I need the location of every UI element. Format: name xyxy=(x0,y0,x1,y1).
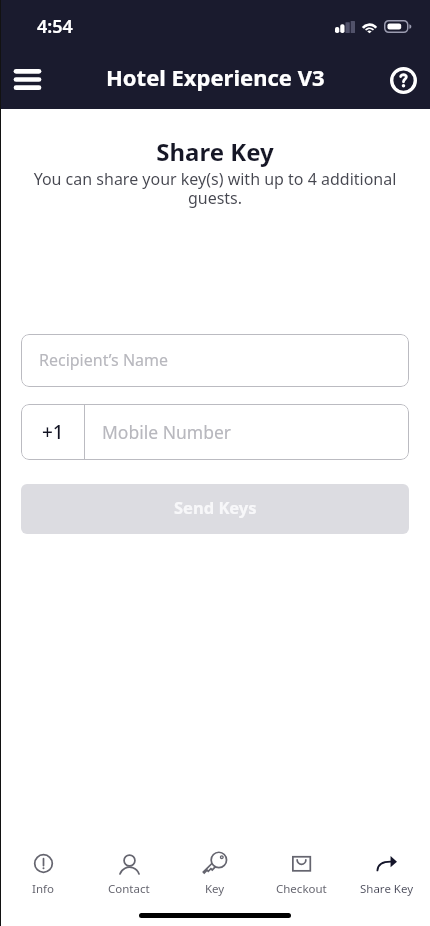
staticText: You can share your key(s) with up to 4 a… xyxy=(16,168,414,209)
button[interactable]: +1 xyxy=(21,404,84,460)
button[interactable]: Contact xyxy=(86,826,172,898)
staticText: Key xyxy=(205,881,225,897)
staticText: Info xyxy=(32,881,54,897)
staticText: Hotel Experience V3 xyxy=(106,62,325,92)
button[interactable]: Help xyxy=(381,58,425,102)
staticText: Checkout xyxy=(276,881,327,897)
staticText: 4:54 xyxy=(37,14,73,39)
button[interactable]: Share Key xyxy=(344,826,430,898)
button[interactable]: Menu xyxy=(3,55,51,103)
button[interactable]: Info xyxy=(0,826,86,898)
button[interactable]: Key xyxy=(172,826,258,898)
staticText: Send Keys xyxy=(174,496,257,518)
staticText: Recipient’s Name xyxy=(39,349,169,371)
staticText: Share Key xyxy=(0,135,430,168)
button[interactable]: Checkout xyxy=(258,826,344,898)
staticText: Mobile Number xyxy=(102,420,232,444)
staticText: Share Key xyxy=(360,881,414,897)
button[interactable]: Mobile Number xyxy=(85,404,409,460)
staticText: Contact xyxy=(108,881,150,897)
button[interactable]: Send Keys xyxy=(21,484,409,534)
staticText: +1 xyxy=(42,419,64,445)
button[interactable]: Recipient’s Name xyxy=(21,334,409,387)
